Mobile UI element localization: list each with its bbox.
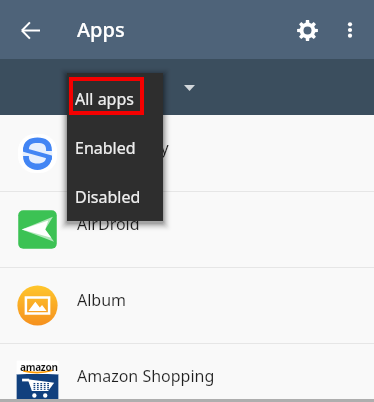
staticText: Album: [77, 289, 127, 311]
staticText: Amazon Shopping: [77, 365, 215, 387]
staticText: Disabled: [75, 186, 141, 208]
staticText: 360 Security: [77, 137, 169, 159]
button[interactable]: Disabled: [67, 186, 163, 216]
button[interactable]: Back: [14, 14, 46, 46]
staticText: Enabled: [75, 137, 136, 159]
button[interactable]: Filter dropdown: [176, 75, 202, 101]
button[interactable]: amazon: [0, 344, 374, 402]
button[interactable]: All apps: [67, 88, 163, 118]
staticText: Apps: [77, 16, 125, 43]
button[interactable]: Settings: [291, 14, 323, 46]
button[interactable]: Album: [0, 268, 374, 343]
button[interactable]: 360 Security: [0, 116, 374, 191]
staticText: amazon: [20, 360, 58, 374]
button[interactable]: AirDroid: [0, 192, 374, 267]
button[interactable]: Enabled: [67, 137, 163, 167]
button[interactable]: More options: [334, 14, 366, 46]
staticText: AirDroid: [77, 213, 140, 235]
staticText: All apps: [75, 88, 134, 110]
